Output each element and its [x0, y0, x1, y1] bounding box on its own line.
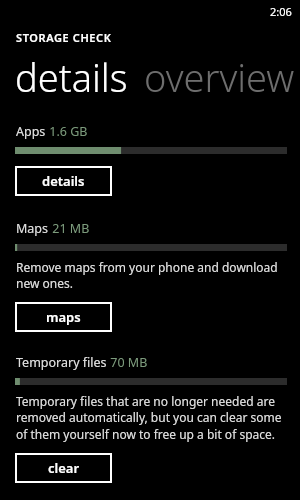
- staticText: Temporary files that are no longer neede…: [16, 393, 286, 443]
- staticText: maps: [46, 308, 81, 326]
- staticText: Remove maps from your phone and download…: [16, 259, 286, 292]
- staticText: 2:06: [270, 4, 292, 19]
- button[interactable]: details: [15, 51, 128, 103]
- staticText: Temporary files: [16, 354, 107, 371]
- staticText: 70 MB: [107, 354, 148, 371]
- staticText: details: [42, 172, 85, 190]
- staticText: 1.6 GB: [46, 123, 88, 140]
- button[interactable]: overview: [144, 51, 295, 103]
- staticText: Maps: [16, 220, 49, 237]
- button[interactable]: maps: [15, 302, 112, 332]
- staticText: STORAGE CHECK: [16, 30, 112, 45]
- button[interactable]: clear: [15, 453, 112, 483]
- staticText: clear: [48, 459, 80, 477]
- staticText: Apps: [16, 123, 46, 140]
- button[interactable]: details: [15, 166, 112, 196]
- staticText: 21 MB: [49, 220, 90, 237]
